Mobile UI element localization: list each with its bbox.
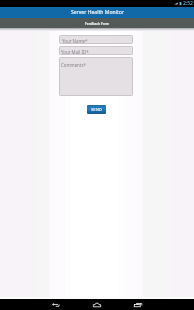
staticText: Comments* <box>61 62 86 68</box>
staticText: Server Health Monitor <box>71 9 124 16</box>
staticText: 2:52 <box>183 0 193 7</box>
button[interactable]: Recents <box>133 299 143 310</box>
staticText: Your Name* <box>62 38 88 44</box>
staticText: Feedback Form <box>85 22 110 26</box>
button[interactable]: SEND <box>87 105 106 114</box>
button[interactable]: Back <box>51 299 61 310</box>
button[interactable]: Your Mail ID* <box>59 46 133 55</box>
staticText: SEND <box>91 107 102 113</box>
staticText: Your Mail ID* <box>61 49 89 55</box>
button[interactable]: Comments* <box>59 57 133 96</box>
button[interactable]: Your Name* <box>59 35 133 44</box>
button[interactable]: Home <box>92 299 102 310</box>
